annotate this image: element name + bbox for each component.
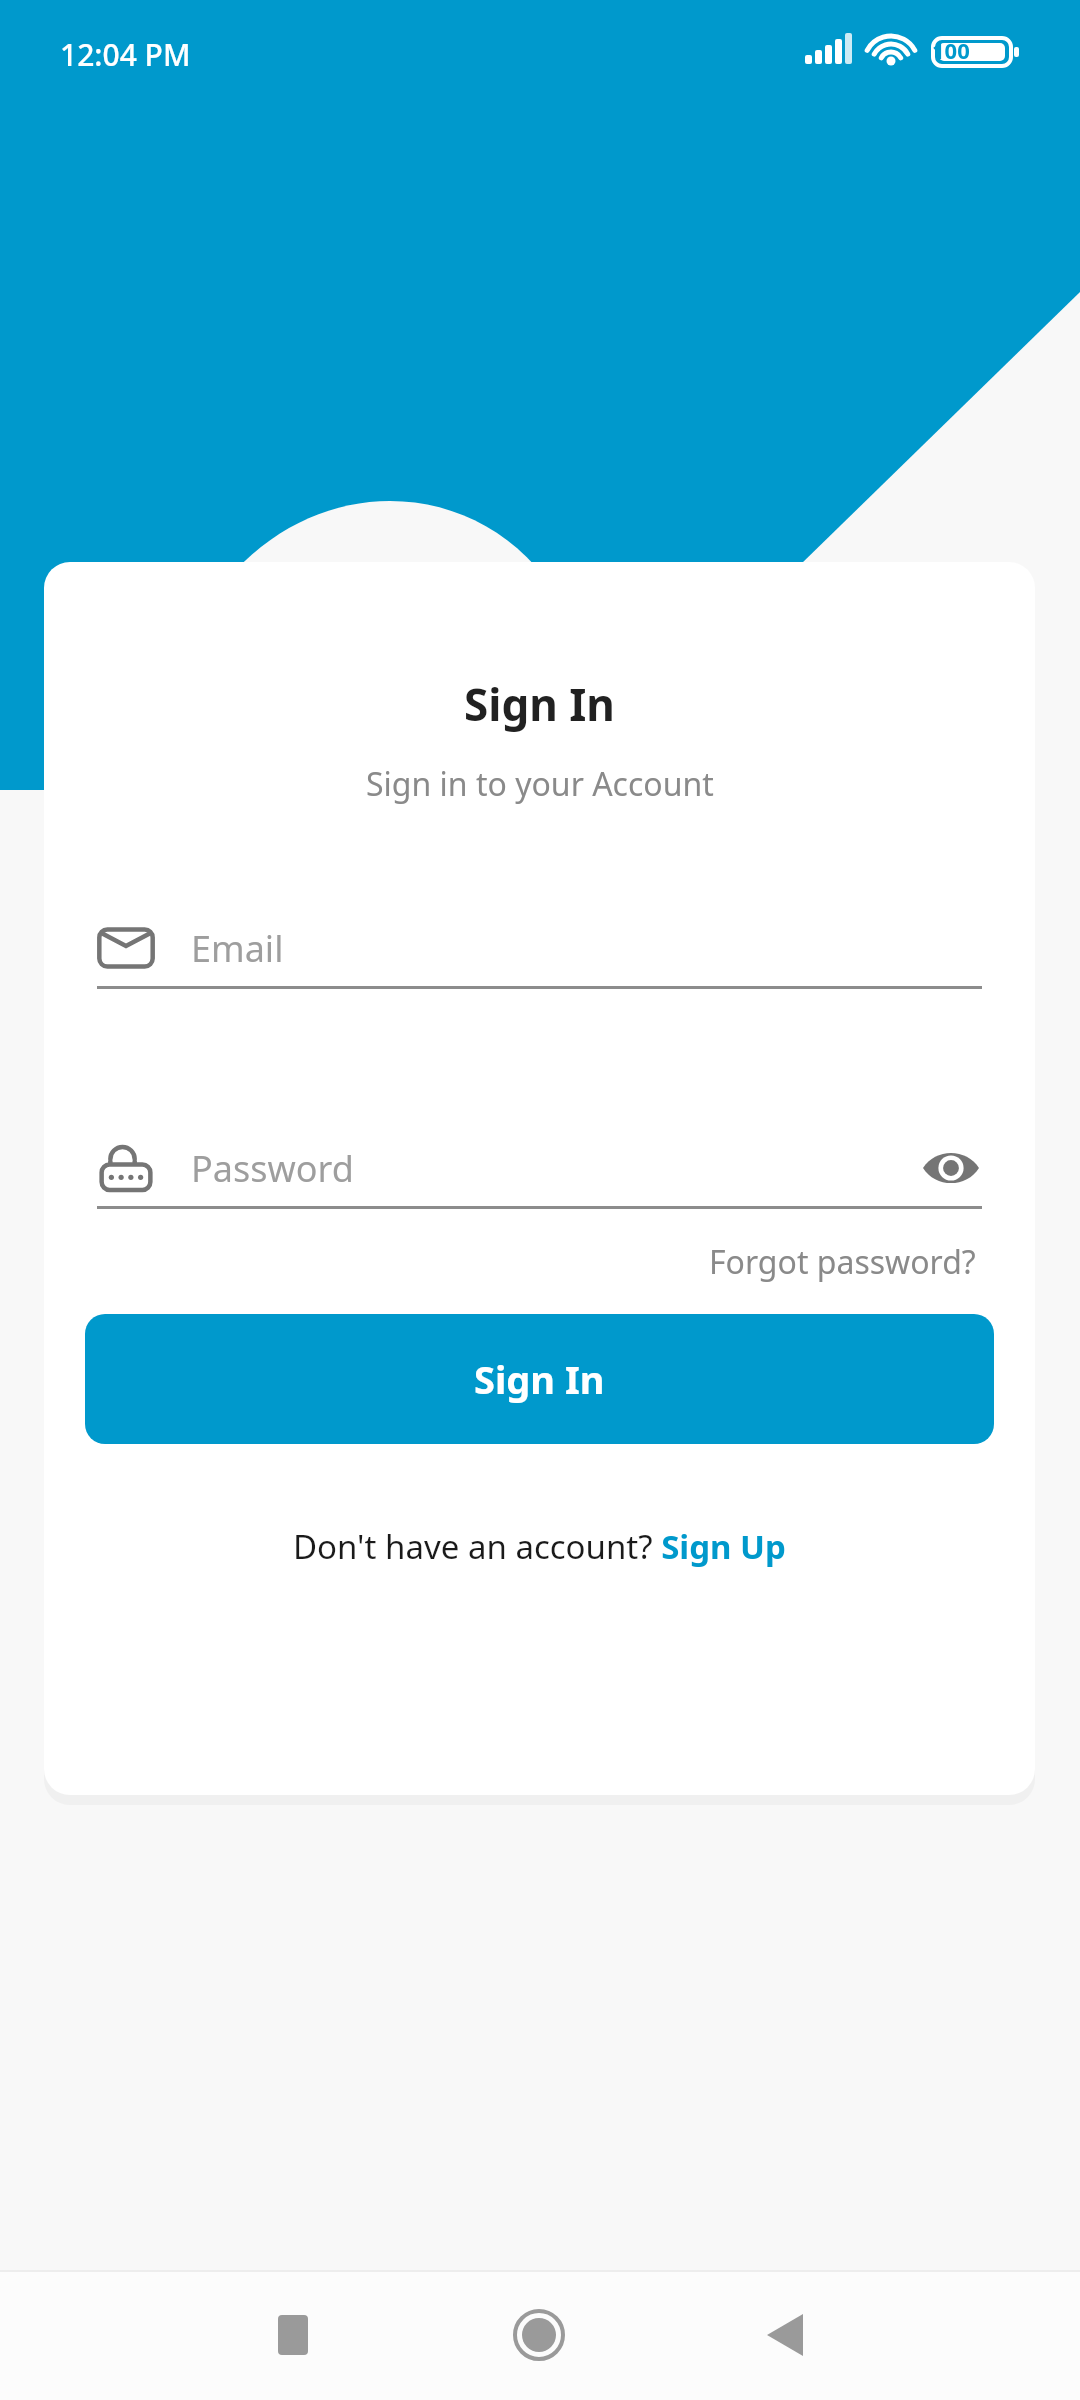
staticText: Email [191, 924, 284, 973]
staticText: 100 [932, 35, 970, 65]
staticText: Sign In [464, 674, 615, 734]
staticText: 12:04 PM [60, 34, 191, 75]
button[interactable]: Show password [920, 1137, 982, 1199]
staticText: Sign In [474, 1353, 605, 1405]
staticText: Password [191, 1144, 354, 1193]
button[interactable]: Home [491, 2287, 587, 2383]
button[interactable]: Password [97, 1130, 982, 1206]
button[interactable]: Don't have an account? Sign Up [285, 1516, 794, 1577]
button[interactable]: Forgot password? [703, 1232, 982, 1292]
staticText: Don't have an account? Sign Up [293, 1524, 786, 1569]
button[interactable]: Sign In [85, 1314, 994, 1444]
staticText: Sign in to your Account [366, 762, 714, 806]
button[interactable]: Back [737, 2287, 833, 2383]
button[interactable]: Recent apps [245, 2287, 341, 2383]
staticText: Forgot password? [709, 1240, 976, 1284]
button[interactable]: Email [97, 910, 982, 986]
